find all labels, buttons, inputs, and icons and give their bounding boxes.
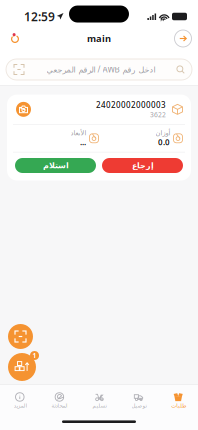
staticText: استلام	[42, 161, 68, 170]
button[interactable]: Refresh	[4, 27, 26, 49]
staticText: ادخل رقم AWB / الرقم المرجعي	[46, 64, 155, 75]
staticText: توصيل	[131, 403, 146, 409]
button[interactable]: ادخل رقم AWB / الرقم المرجعي	[0, 59, 198, 80]
button[interactable]: Take photo	[15, 101, 32, 118]
button[interactable]: Scan barcode	[8, 324, 33, 349]
button[interactable]: طلبات	[158, 387, 198, 413]
staticText: الأبعاد	[70, 129, 86, 137]
button[interactable]: المحادثة	[40, 387, 79, 413]
staticText: 1	[32, 351, 36, 360]
button[interactable]: استلام	[15, 158, 96, 173]
staticText: أوزان	[155, 129, 170, 137]
staticText: 3622	[150, 110, 166, 119]
staticText: المحادثة	[51, 403, 68, 409]
staticText: تسليم	[92, 403, 106, 409]
button[interactable]: تسليم	[79, 387, 119, 413]
button[interactable]: Next	[172, 27, 194, 49]
button[interactable]: Bulk scan	[8, 353, 36, 381]
staticText: main	[87, 32, 111, 45]
staticText: 12:59	[24, 8, 55, 24]
button[interactable]: المزيد	[0, 387, 40, 413]
staticText: المزيد	[13, 403, 26, 409]
button[interactable]: توصيل	[119, 387, 158, 413]
button[interactable]: إرجاع	[102, 158, 183, 173]
staticText: 24020002000003	[96, 100, 166, 110]
staticText: طلبات	[171, 403, 186, 409]
staticText: 0.0	[158, 137, 170, 147]
staticText: ...	[80, 137, 86, 147]
staticText: إرجاع	[131, 161, 153, 170]
